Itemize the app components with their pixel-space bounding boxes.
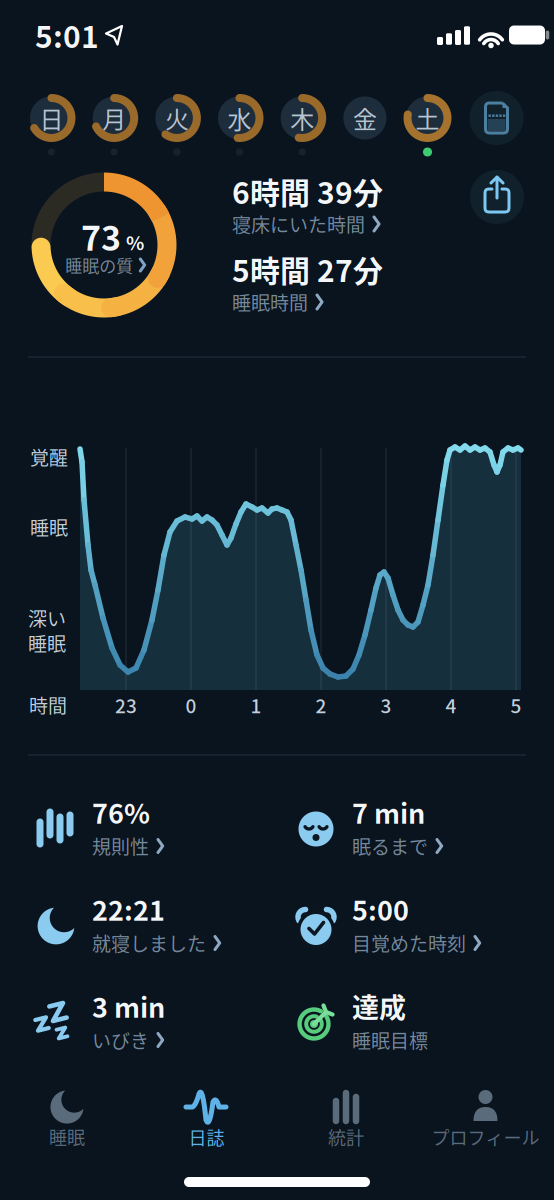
staticText: 0 (185, 691, 196, 719)
staticText: 日誌 (188, 1124, 224, 1150)
staticText: 76% (92, 792, 150, 832)
staticText: 5:00 (352, 889, 409, 929)
button[interactable]: 統計 (286, 1085, 406, 1149)
staticText: 睡眠 (30, 513, 68, 541)
staticText: 6時間 39分 (232, 169, 383, 213)
staticText: 睡眠時間 (232, 288, 308, 316)
staticText: 土 (415, 101, 439, 135)
staticText: 覚醒 (30, 443, 68, 471)
staticText: 3 (380, 691, 391, 719)
staticText: 5:01 (35, 13, 99, 57)
button[interactable]: 睡眠 (7, 1085, 127, 1149)
button[interactable]: プロフィール (425, 1085, 545, 1149)
staticText: 2 (315, 691, 326, 719)
button[interactable]: 共有 (470, 170, 524, 224)
button[interactable]: 6時間 39分 (230, 166, 504, 248)
staticText: 3 min (92, 986, 165, 1026)
staticText: 7 min (352, 792, 425, 832)
staticText: 規則性 (92, 832, 149, 860)
button[interactable]: 5:00 (290, 881, 526, 971)
button[interactable]: 土 (400, 91, 454, 145)
button[interactable]: 日 (24, 91, 78, 145)
button[interactable]: 日誌 (146, 1085, 266, 1149)
staticText: 深い (28, 604, 66, 632)
staticText: 達成 (352, 986, 406, 1026)
staticText: 73 (81, 211, 121, 261)
staticText: % (126, 228, 144, 256)
staticText: 5時間 27分 (232, 247, 383, 291)
staticText: 月 (102, 101, 126, 135)
staticText: 4 (445, 691, 456, 719)
button[interactable]: 73 (27, 168, 181, 322)
button[interactable]: 76% (30, 784, 266, 874)
staticText: プロフィール (431, 1124, 539, 1150)
staticText: 木 (290, 101, 314, 135)
staticText: 5 (510, 691, 521, 719)
staticText: 統計 (328, 1124, 364, 1150)
staticText: いびき (92, 1026, 149, 1054)
button[interactable]: 睡眠メモ (469, 91, 523, 145)
staticText: 睡眠目標 (352, 1026, 428, 1054)
button[interactable]: 7 min (290, 784, 526, 874)
staticText: 水 (227, 101, 251, 135)
staticText: 時間 (29, 691, 67, 719)
staticText: 火 (165, 101, 189, 135)
button[interactable]: 木 (275, 91, 329, 145)
button[interactable]: 金 (338, 91, 392, 145)
staticText: 就寝しました (92, 929, 206, 957)
staticText: 金 (353, 101, 377, 135)
button[interactable]: 月 (87, 91, 141, 145)
staticText: 日 (39, 101, 63, 135)
button[interactable]: 達成 (290, 978, 526, 1068)
button[interactable]: 5時間 27分 (230, 244, 504, 326)
staticText: 1 (250, 691, 261, 719)
button[interactable]: 3 min (30, 978, 266, 1068)
staticText: 目覚めた時刻 (352, 929, 466, 957)
staticText: 23 (115, 691, 137, 719)
button[interactable]: 22:21 (30, 881, 266, 971)
button[interactable]: 火 (150, 91, 204, 145)
staticText: 寝床にいた時間 (232, 210, 365, 238)
staticText: 睡眠 (28, 629, 66, 657)
staticText: 眠るまで (352, 832, 428, 860)
staticText: 睡眠の質 (65, 253, 133, 277)
staticText: 睡眠 (49, 1124, 85, 1150)
button[interactable]: 水 (212, 91, 266, 145)
staticText: 22:21 (92, 889, 165, 929)
